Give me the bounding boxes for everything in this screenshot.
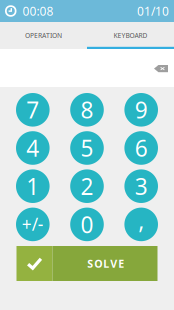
staticText: 3 [135, 171, 148, 201]
staticText: 0 [80, 209, 93, 239]
button[interactable]: 8 [70, 93, 104, 127]
button[interactable]: 9 [124, 93, 158, 127]
button[interactable]: OPERATION [0, 22, 87, 49]
staticText: 01/10 [137, 3, 169, 19]
staticText: KEYBOARD [113, 31, 147, 40]
button[interactable]: 7 [16, 93, 50, 127]
button[interactable]: 2 [70, 169, 104, 203]
staticText: 6 [135, 133, 148, 163]
button[interactable]: Delete [154, 65, 168, 72]
staticText: OPERATION [25, 31, 62, 40]
staticText: +/- [22, 212, 44, 235]
button[interactable]: KEYBOARD [87, 22, 174, 49]
button[interactable]: , [124, 208, 158, 241]
button[interactable]: 3 [124, 169, 158, 203]
staticText: 5 [80, 133, 93, 163]
staticText: 00:08 [22, 3, 53, 19]
button[interactable]: 0 [70, 208, 104, 241]
staticText: 1 [26, 171, 39, 201]
button[interactable]: 5 [70, 131, 104, 165]
staticText: SOLVE [87, 256, 124, 271]
staticText: , [138, 205, 144, 235]
staticText: 2 [80, 171, 93, 201]
staticText: 8 [80, 95, 93, 125]
button[interactable]: 4 [16, 131, 50, 165]
staticText: 7 [26, 95, 39, 125]
button[interactable]: +/- [16, 208, 50, 241]
staticText: 4 [26, 133, 39, 163]
staticText: 9 [135, 95, 148, 125]
button[interactable]: SOLVE [16, 246, 157, 281]
button[interactable]: 6 [124, 131, 158, 165]
button[interactable]: 1 [16, 169, 50, 203]
